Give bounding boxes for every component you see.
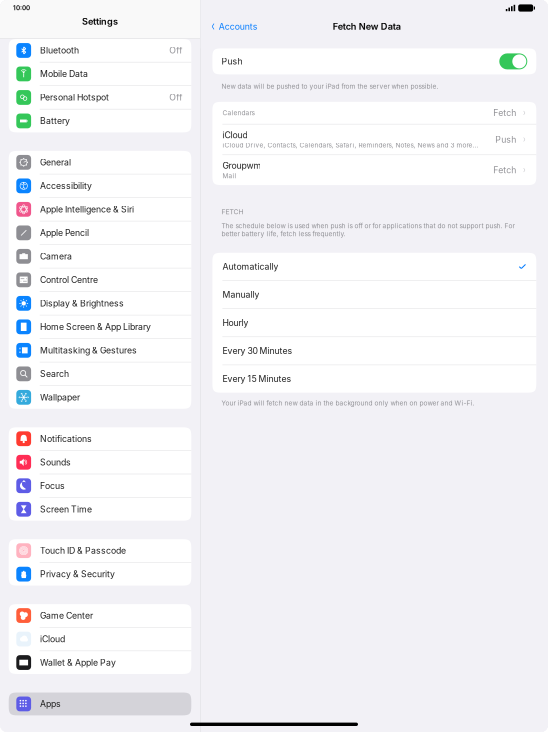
staticText: Off [169,92,182,103]
staticText: FETCH [221,208,243,216]
button[interactable]: iCloud [212,124,536,154]
button[interactable]: Camera [9,245,191,268]
staticText: Accessibility [40,181,92,191]
staticText: Apple Pencil [40,228,89,238]
staticText: Screen Time [40,504,92,514]
staticText: Personal Hotspot [40,92,109,103]
staticText: Touch ID & Passcode [40,545,126,556]
staticText: iCloud [40,634,65,644]
button[interactable]: Wallet & Apple Pay [9,651,191,674]
staticText: Push [221,56,242,67]
staticText: Every 15 Minutes [222,374,291,384]
staticText: Settings [82,16,118,27]
staticText: Game Center [40,610,93,621]
staticText: Bluetooth [40,45,79,56]
staticText: Apps [40,699,61,709]
button[interactable]: Automatically [212,253,536,280]
staticText: Notifications [40,433,92,444]
button[interactable]: Wallpaper [9,386,191,409]
staticText: Off [169,45,182,56]
button[interactable]: Apple Pencil [9,221,191,244]
button[interactable]: Notifications [9,427,191,450]
button[interactable]: Apps [9,692,191,715]
staticText: Privacy & Security [40,569,115,579]
staticText: Accounts [219,21,258,32]
staticText: Groupwm [222,160,261,171]
staticText: Home Screen & App Library [40,322,151,332]
staticText: Battery [40,116,70,126]
staticText: iCloud Drive, Contacts, Calendars, Safar… [222,141,478,149]
button[interactable]: Accounts [211,17,258,36]
staticText: Apple Intelligence & Siri [40,204,134,215]
staticText: Push [495,134,516,145]
staticText: New data will be pushed to your iPad fro… [221,82,438,90]
button[interactable]: Personal Hotspot [9,86,191,109]
button[interactable]: Focus [9,474,191,497]
staticText: Search [40,369,69,379]
button[interactable]: General [9,151,191,174]
button[interactable]: Sounds [9,451,191,474]
button[interactable]: Push [499,53,527,69]
button[interactable]: Screen Time [9,498,191,521]
button[interactable]: Accessibility [9,174,191,197]
staticText: iCloud [222,130,247,140]
staticText: Wallet & Apple Pay [40,657,116,668]
staticText: Fetch New Data [333,21,401,32]
button[interactable]: Home Screen & App Library [9,315,191,338]
staticText: Focus [40,480,65,491]
staticText: Control Centre [40,275,98,285]
staticText: Hourly [222,317,248,328]
staticText: Manually [222,289,259,300]
staticText: Wallpaper [40,392,80,403]
staticText: Multitasking & Gestures [40,345,137,356]
button[interactable]: Control Centre [9,268,191,291]
button[interactable]: iCloud [9,628,191,650]
button[interactable]: Search [9,362,191,385]
button[interactable]: Manually [212,281,536,308]
button[interactable]: Game Center [9,604,191,627]
staticText: Display & Brightness [40,298,124,309]
button[interactable]: Every 15 Minutes [212,365,536,393]
staticText: Sounds [40,457,71,467]
button[interactable]: Battery [9,109,191,132]
button[interactable]: Touch ID & Passcode [9,539,191,562]
staticText: Fetch [493,108,516,118]
staticText: Calendars [222,109,254,117]
staticText: Fetch [493,165,516,175]
staticText: Your iPad will fetch new data in the bac… [221,399,474,407]
button[interactable]: Hourly [212,309,536,336]
button[interactable]: Bluetooth [9,39,191,62]
button[interactable]: Apple Intelligence & Siri [9,198,191,221]
staticText: Mobile Data [40,69,88,79]
staticText: Every 30 Minutes [222,346,292,356]
staticText: Mail [222,172,236,180]
button[interactable]: Display & Brightness [9,292,191,315]
button[interactable]: Groupwm [212,155,536,185]
button[interactable]: Privacy & Security [9,563,191,586]
button[interactable]: Mobile Data [9,62,191,85]
button[interactable]: Every 30 Minutes [212,337,536,365]
button[interactable]: Multitasking & Gestures [9,339,191,362]
button[interactable]: Calendars [212,102,536,124]
staticText: Camera [40,251,72,262]
staticText: The schedule below is used when push is … [221,222,514,238]
staticText: General [40,157,71,168]
staticText: 10:00 [13,4,30,12]
staticText: Automatically [222,261,278,272]
